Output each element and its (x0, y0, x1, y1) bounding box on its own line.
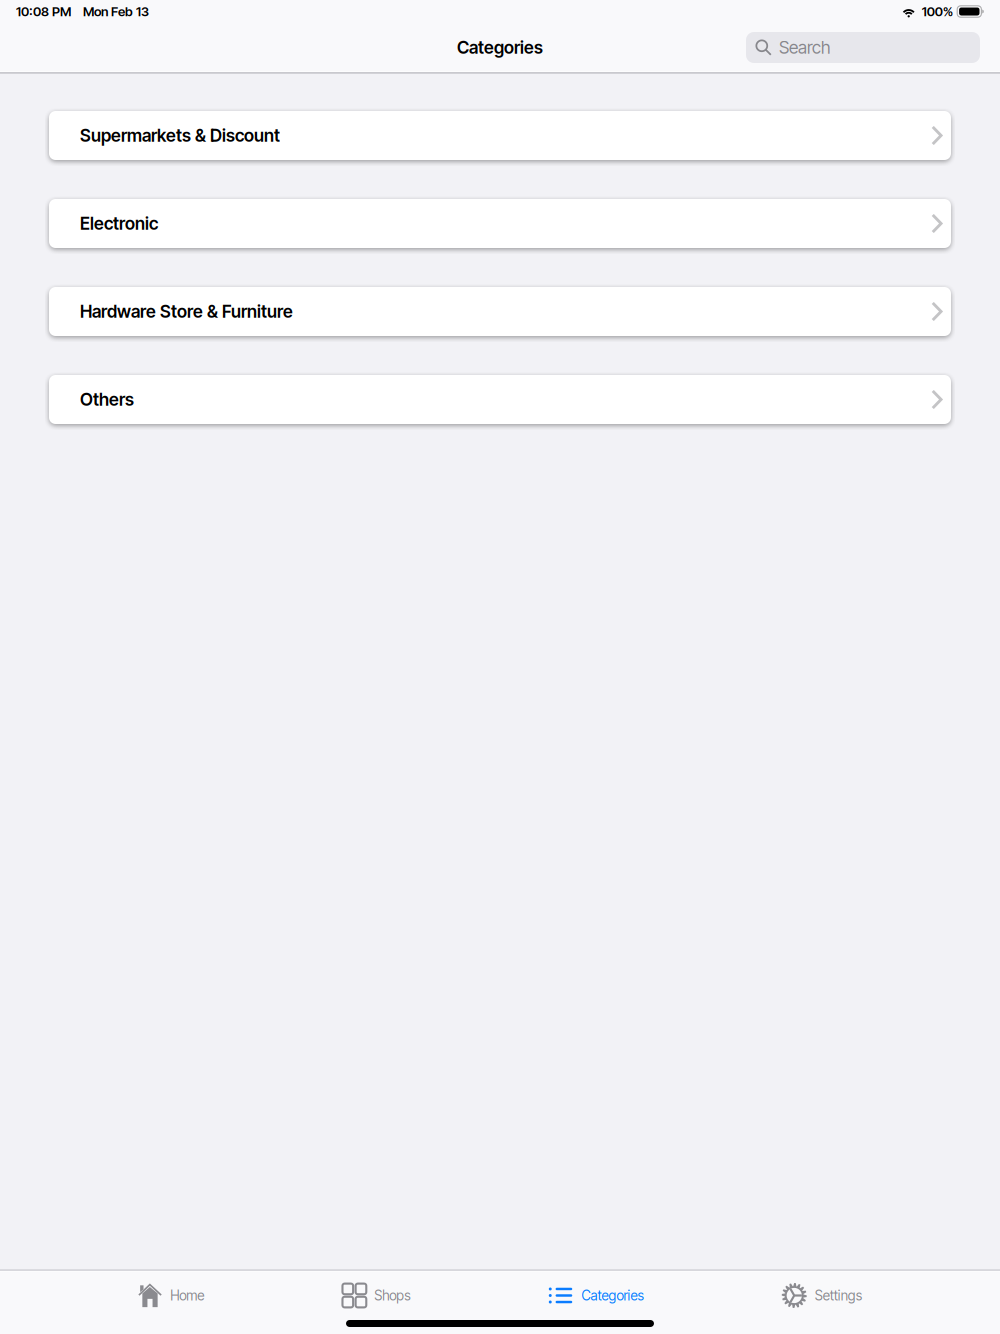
staticText: Electronic (80, 213, 158, 234)
staticText: Categories (581, 1287, 643, 1304)
button[interactable]: Shops (342, 1272, 410, 1319)
staticText: Hardware Store & Furniture (80, 301, 293, 322)
staticText: Others (80, 389, 134, 410)
staticText: Home (170, 1287, 204, 1304)
button[interactable]: Search (746, 32, 980, 63)
staticText: Settings (815, 1287, 862, 1304)
staticText: 10:08 PM (16, 4, 71, 19)
staticText: 100% (922, 4, 954, 19)
button[interactable]: Categories (548, 1272, 643, 1319)
button[interactable]: Home (138, 1272, 204, 1319)
button[interactable]: Hardware Store & Furniture (49, 287, 951, 336)
staticText: Categories (457, 37, 543, 58)
staticText: Mon Feb 13 (83, 4, 149, 19)
button[interactable]: Electronic (49, 199, 951, 248)
staticText: Shops (374, 1287, 410, 1304)
staticText: Supermarkets & Discount (80, 125, 280, 146)
staticText: Search (779, 37, 830, 58)
button[interactable]: Others (49, 375, 951, 424)
button[interactable]: Settings (782, 1272, 862, 1319)
button[interactable]: Supermarkets & Discount (49, 111, 951, 160)
